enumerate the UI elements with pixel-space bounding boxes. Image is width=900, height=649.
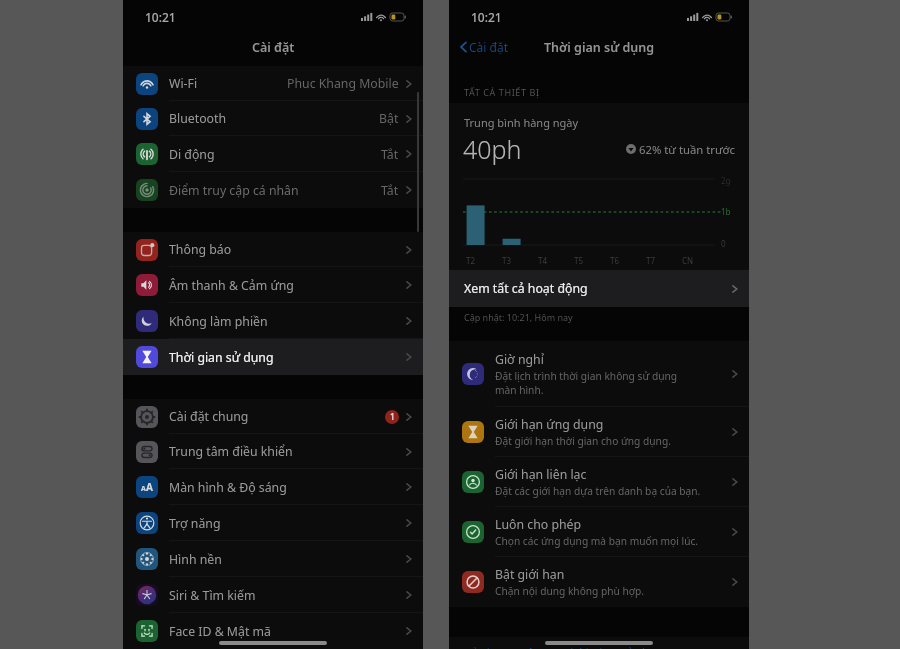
staticText: Trợ năng (169, 515, 221, 532)
button[interactable]: A (123, 469, 423, 505)
button[interactable]: Cài đặt chung (123, 399, 423, 434)
staticText: Điểm truy cập cá nhân (169, 182, 299, 199)
button[interactable]: Giờ nghỉ (449, 341, 749, 407)
staticText: Siri & Tìm kiếm (169, 587, 256, 604)
staticText: Giới hạn liên lạc (495, 466, 587, 483)
staticText: Bluetooth (169, 110, 227, 127)
staticText: T2 (466, 255, 476, 266)
button[interactable]: Giới hạn liên lạc (449, 457, 749, 507)
staticText: Tắt (381, 146, 399, 163)
staticText: T3 (502, 255, 512, 266)
button[interactable]: Wi-Fi (123, 66, 423, 101)
staticText: Cài đặt (469, 39, 509, 55)
button[interactable]: Không làm phiền (123, 303, 423, 339)
button[interactable]: Siri & Tìm kiếm (123, 577, 423, 613)
button[interactable]: Điểm truy cập cá nhân (123, 172, 423, 208)
staticText: 40ph (463, 132, 522, 166)
staticText: 1 (390, 411, 395, 423)
staticText: Chặn nội dung không phù hợp. (495, 584, 645, 598)
staticText: Phuc Khang Mobile (287, 75, 399, 92)
staticText: 62% từ tuần trước (639, 142, 735, 157)
staticText: Thời gian sử dụng (169, 349, 274, 366)
staticText: Trung bình hàng ngày (464, 115, 579, 130)
staticText: 10:21 (471, 9, 502, 25)
staticText: TẤT CẢ THIẾT BỊ (464, 86, 540, 98)
staticText: Màn hình & Độ sáng (169, 479, 287, 496)
button[interactable]: Thông báo (123, 232, 423, 267)
button[interactable]: Trợ năng (123, 505, 423, 541)
staticText: Chọn các ứng dụng mà bạn muốn mọi lúc. (495, 534, 699, 548)
button[interactable]: Âm thanh & Cảm ứng (123, 267, 423, 303)
staticText: Luôn cho phép (495, 516, 582, 533)
staticText: Bật (379, 110, 399, 127)
button[interactable]: Sử dụng mật mã Thời gian sử dụng (449, 637, 749, 649)
staticText: Âm thanh & Cảm ứng (169, 277, 294, 294)
staticText: T4 (538, 255, 548, 266)
staticText: 2g (721, 175, 731, 186)
staticText: Face ID & Mật mã (169, 623, 271, 640)
staticText: Cài đặt (252, 39, 295, 56)
button[interactable]: Luôn cho phép (449, 507, 749, 557)
staticText: Di động (169, 146, 215, 163)
button[interactable]: Thời gian sử dụng (123, 339, 423, 375)
staticText: T7 (646, 255, 656, 266)
staticText: Thông báo (169, 241, 232, 258)
button[interactable]: Bật giới hạn (449, 557, 749, 607)
staticText: T6 (610, 255, 620, 266)
staticText: CN (682, 255, 694, 266)
staticText: Hình nền (169, 551, 222, 568)
staticText: 1b (721, 206, 731, 217)
staticText: Không làm phiền (169, 313, 268, 330)
staticText: Bật giới hạn (495, 566, 565, 583)
staticText: Cài đặt chung (169, 408, 249, 425)
staticText: Đặt lịch trình thời gian không sử dụng m… (495, 369, 678, 397)
staticText: Giờ nghỉ (495, 351, 544, 368)
staticText: Cập nhật: 10:21, Hôm nay (464, 311, 573, 323)
button[interactable]: Back to Cài đặt (460, 39, 509, 55)
staticText: A (146, 480, 153, 494)
staticText: Đặt giới hạn thời gian cho ứng dụng. (495, 434, 671, 448)
staticText: Thời gian sử dụng (544, 39, 655, 56)
staticText: Sử dụng mật mã Thời gian sử dụng (464, 645, 668, 649)
button[interactable]: Di động (123, 136, 423, 172)
staticText: Giới hạn ứng dụng (495, 416, 604, 433)
button[interactable]: Xem tất cả hoạt động (449, 270, 749, 307)
button[interactable]: Face ID & Mật mã (123, 613, 423, 649)
staticText: 0 (721, 238, 726, 249)
button[interactable]: Trung tâm điều khiển (123, 434, 423, 469)
staticText: Xem tất cả hoạt động (464, 280, 588, 297)
staticText: 10:21 (145, 9, 176, 25)
staticText: T5 (574, 255, 584, 266)
staticText: Wi-Fi (169, 75, 198, 92)
staticText: Đặt các giới hạn dựa trên danh bạ của bạ… (495, 484, 701, 498)
staticText: Tắt (381, 182, 399, 199)
button[interactable]: Bluetooth (123, 101, 423, 136)
staticText: Trung tâm điều khiển (169, 443, 293, 460)
button[interactable]: Giới hạn ứng dụng (449, 407, 749, 457)
staticText: A (141, 484, 146, 494)
button[interactable]: Hình nền (123, 541, 423, 577)
